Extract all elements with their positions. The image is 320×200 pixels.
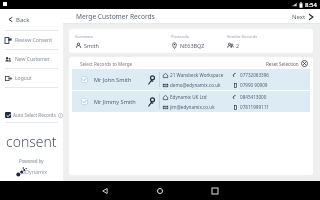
staticText: New Customer <box>15 56 50 63</box>
button[interactable]: Recent apps <box>207 183 223 199</box>
staticText: 8:54 <box>305 1 317 9</box>
staticText: Select Records to Merge <box>80 61 133 67</box>
button[interactable]: Auto Select Records <box>0 108 63 122</box>
staticText: Review Consent <box>15 37 52 44</box>
button[interactable]: Reset Selection <box>266 60 308 67</box>
staticText: NE63BQZ <box>180 42 205 49</box>
staticText: Surname <box>75 34 93 40</box>
staticText: Mr Jimmy Smith <box>94 98 136 106</box>
staticText: Similar Records <box>227 34 258 40</box>
staticText: 2 <box>236 42 240 49</box>
staticText: Smith <box>84 42 99 49</box>
staticText: Edynamix UK Ltd <box>170 94 207 100</box>
staticText: 07811999111 <box>240 104 269 110</box>
staticText: 07990 90909 <box>240 82 268 88</box>
staticText: jim@edynamix.co.uk <box>170 104 215 110</box>
button[interactable]: Logout <box>0 69 63 87</box>
staticText: 0845413000 <box>240 94 267 100</box>
staticText: Logout <box>15 75 32 82</box>
button[interactable]: New Customer <box>0 50 63 68</box>
staticText: Next <box>292 13 306 21</box>
staticText: eDynamix <box>22 168 48 176</box>
staticText: 07732063396 <box>240 72 269 78</box>
staticText: Auto Select Records <box>13 112 56 118</box>
button[interactable]: Back <box>97 183 113 199</box>
button[interactable]: Review Consent <box>0 31 63 49</box>
staticText: demo@edynamix.co.uk <box>170 82 221 88</box>
staticText: Back <box>16 16 30 24</box>
button[interactable]: Mr John Smith <box>72 69 310 90</box>
button[interactable]: Home <box>152 183 168 199</box>
staticText: Mr John Smith <box>94 76 132 84</box>
staticText: Reset Selection <box>266 61 299 67</box>
staticText: consent <box>6 132 57 151</box>
button[interactable]: Back <box>0 9 63 30</box>
staticText: 21 Wansbeck Workspace <box>170 72 224 78</box>
staticText: Powered by <box>19 158 44 164</box>
staticText: Postcode <box>171 34 190 40</box>
button[interactable]: Next <box>292 13 320 21</box>
button[interactable]: Mr Jimmy Smith <box>72 91 310 112</box>
staticText: Merge Customer Records <box>76 12 155 21</box>
